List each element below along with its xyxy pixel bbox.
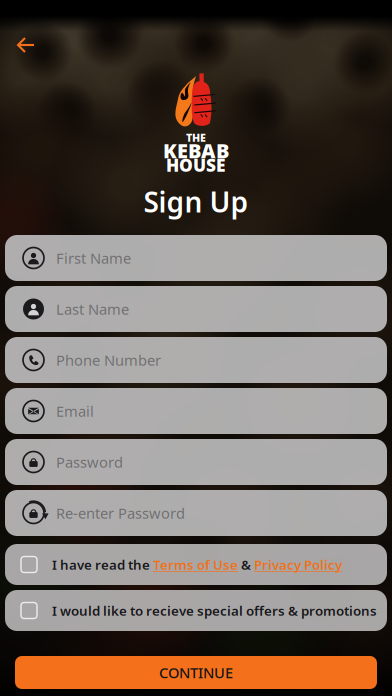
- staticText: THE: [186, 130, 206, 145]
- staticText: Terms of Use: [153, 556, 238, 573]
- button[interactable]: Password: [5, 439, 387, 485]
- staticText: &: [238, 556, 254, 573]
- staticText: KEBAB: [163, 137, 229, 164]
- staticText: Privacy Policy: [254, 556, 342, 573]
- staticText: HOUSE: [166, 153, 226, 176]
- button[interactable]: CONTINUE: [15, 656, 377, 689]
- staticText: CONTINUE: [159, 663, 233, 682]
- staticText: Sign Up: [143, 183, 248, 220]
- button[interactable]: I have read the: [5, 544, 387, 585]
- button[interactable]: First Name: [5, 235, 387, 281]
- button[interactable]: Back: [0, 24, 48, 66]
- button[interactable]: Last Name: [5, 286, 387, 332]
- staticText: I would like to recieve special offers &…: [52, 602, 377, 619]
- button[interactable]: Re-enter Password: [5, 490, 387, 536]
- button[interactable]: I would like to recieve special offers &…: [5, 590, 387, 631]
- staticText: Last Name: [56, 299, 129, 319]
- button[interactable]: Phone Number: [5, 337, 387, 383]
- staticText: Re-enter Password: [56, 503, 185, 523]
- staticText: Password: [56, 452, 123, 472]
- staticText: Email: [56, 401, 94, 421]
- staticText: First Name: [56, 248, 131, 268]
- button[interactable]: Email: [5, 388, 387, 434]
- staticText: Phone Number: [56, 350, 161, 370]
- staticText: I have read the: [52, 556, 153, 573]
